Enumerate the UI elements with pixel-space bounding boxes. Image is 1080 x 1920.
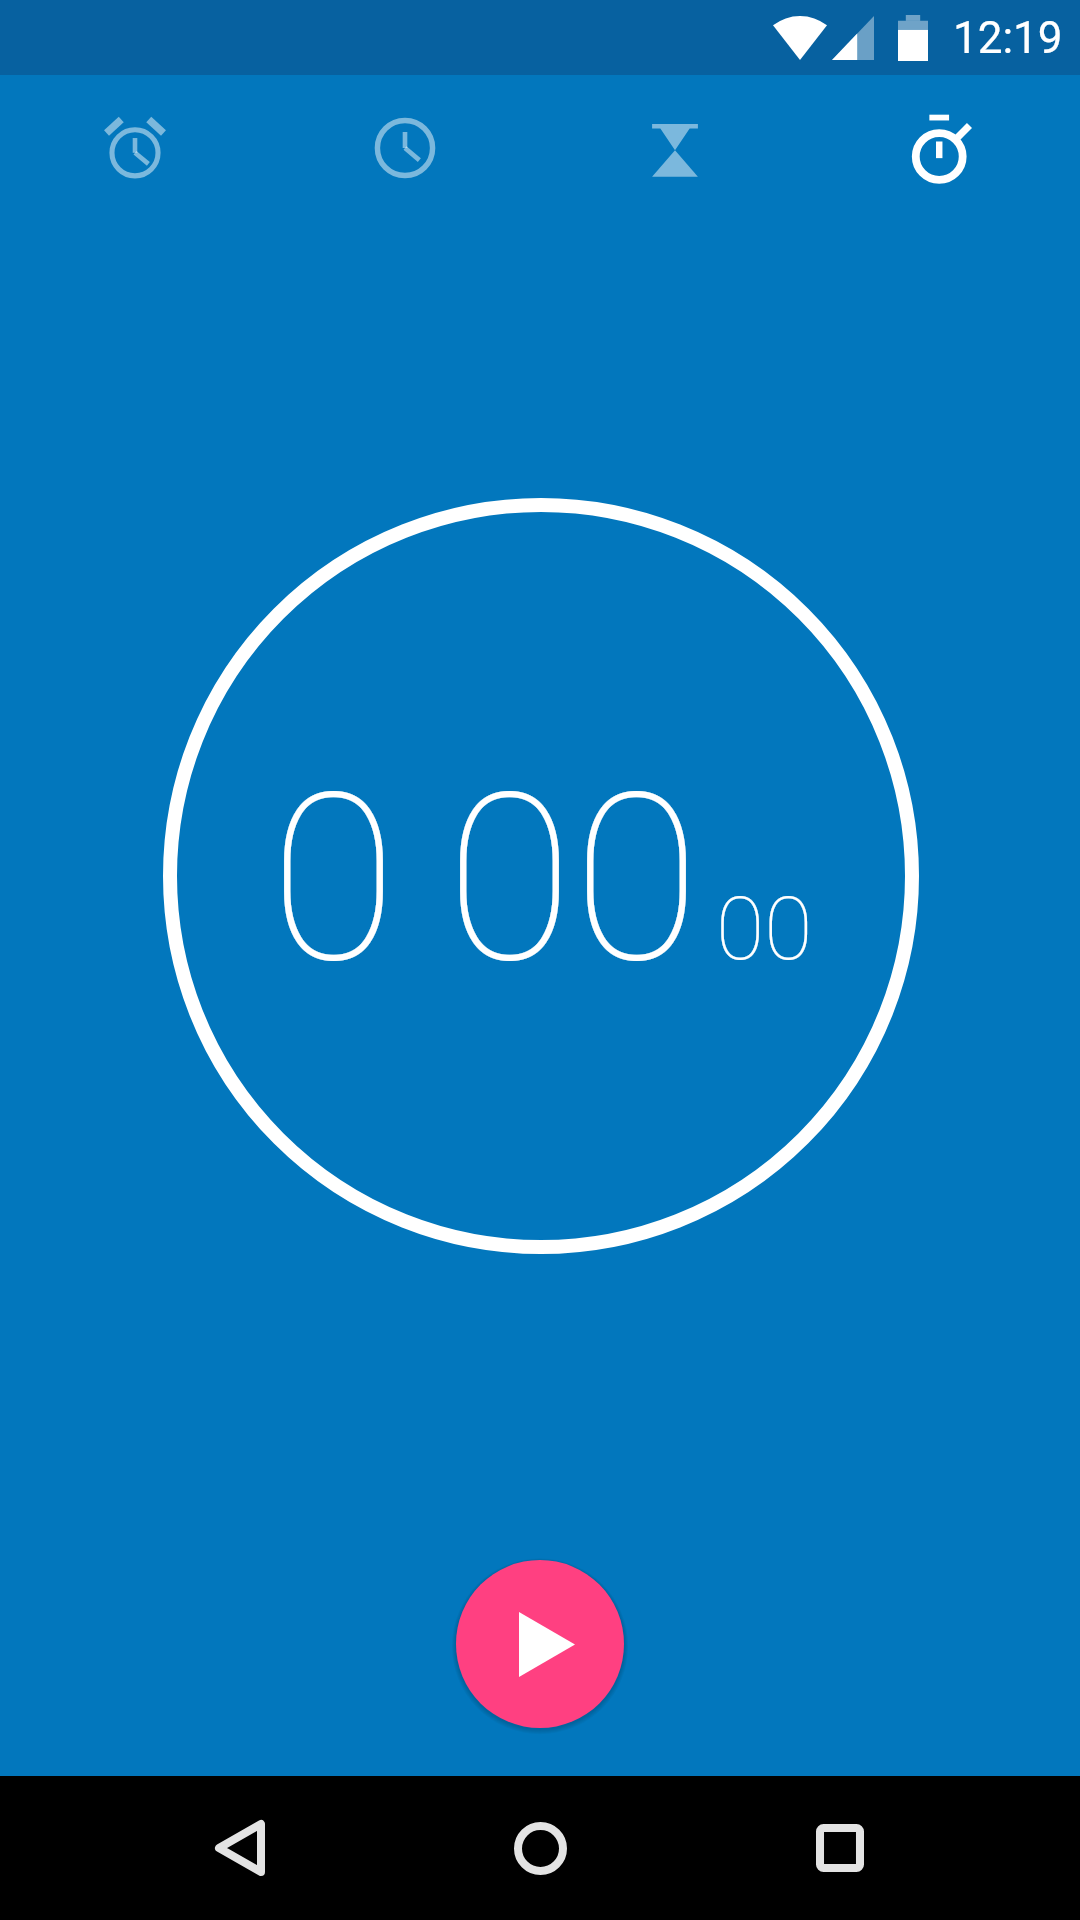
button[interactable]: Alarm xyxy=(0,75,270,220)
staticText: 12:19 xyxy=(953,12,1063,64)
staticText: 0 xyxy=(270,744,397,1016)
button[interactable]: Home xyxy=(450,1776,630,1920)
button[interactable]: Back xyxy=(150,1776,330,1920)
staticText: 00 xyxy=(716,877,813,980)
button[interactable]: Stopwatch xyxy=(810,75,1080,220)
button[interactable]: Recent apps xyxy=(750,1776,930,1920)
staticText: 00 xyxy=(446,744,700,1016)
button[interactable]: Clock xyxy=(270,75,540,220)
button[interactable]: Timer xyxy=(540,75,810,220)
button[interactable]: Start xyxy=(456,1560,624,1728)
